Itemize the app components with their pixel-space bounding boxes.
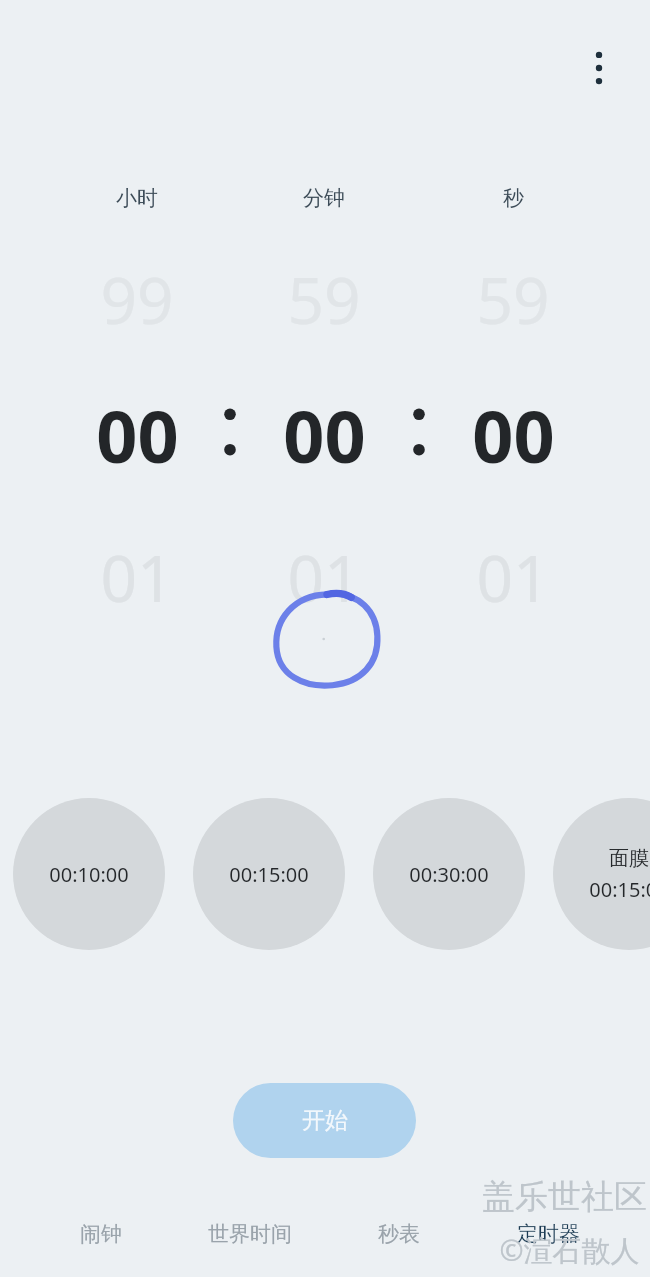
staticText: 秒表 — [378, 1221, 420, 1247]
staticText: 01 — [287, 534, 361, 612]
staticText: 秒 — [503, 185, 524, 211]
button[interactable]: 开始 — [233, 1083, 416, 1158]
button[interactable]: 世界时间 — [176, 1204, 324, 1264]
staticText: 小时 — [116, 185, 158, 211]
staticText: 世界时间 — [208, 1221, 292, 1247]
staticText: 闹钟 — [80, 1221, 122, 1247]
button[interactable]: 00:30:00 — [373, 798, 525, 950]
staticText: 00:15:00 — [589, 876, 650, 903]
staticText: 00 — [283, 386, 366, 478]
staticText: ©渲石散人 — [499, 1230, 640, 1268]
staticText: 00 — [472, 386, 555, 478]
button[interactable]: 00 — [242, 386, 406, 478]
button[interactable]: 秒表 — [325, 1204, 473, 1264]
button[interactable]: 00:15:00 — [193, 798, 345, 950]
button[interactable]: 面膜 — [553, 798, 650, 950]
staticText: 00 — [96, 386, 179, 478]
staticText: 99 — [100, 256, 174, 334]
staticText: 01 — [476, 534, 550, 612]
staticText: 00:30:00 — [409, 861, 489, 888]
staticText: 定时器 — [517, 1221, 580, 1247]
staticText: 面膜 — [609, 846, 649, 871]
button[interactable]: 闹钟 — [27, 1204, 175, 1264]
staticText: 59 — [287, 256, 361, 334]
staticText: 01 — [100, 534, 174, 612]
staticText: 开始 — [302, 1106, 348, 1135]
button[interactable]: 定时器 — [474, 1204, 622, 1264]
staticText: 分钟 — [303, 185, 345, 211]
button[interactable]: 00:10:00 — [13, 798, 165, 950]
staticText: 00:15:00 — [229, 861, 309, 888]
staticText: 59 — [476, 256, 550, 334]
staticText: 盖乐世社区 — [482, 1176, 647, 1218]
staticText: 00:10:00 — [49, 861, 129, 888]
button[interactable]: 00 — [55, 386, 219, 478]
button[interactable]: More options — [572, 41, 625, 94]
button[interactable]: 00 — [431, 386, 595, 478]
